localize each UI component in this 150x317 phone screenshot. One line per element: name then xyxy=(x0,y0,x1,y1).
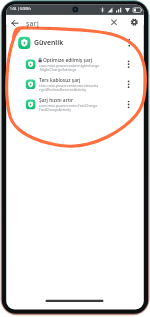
staticText: com.miui.powercenter.nightcharge xyxy=(39,63,100,68)
button[interactable]: Ters kablosuz şarj xyxy=(14,74,136,94)
staticText: com.miui.powercenter.fastCharge. xyxy=(39,103,99,108)
staticText: Şarj hızını artır xyxy=(39,97,73,104)
staticText: FastChargeActivity xyxy=(39,107,72,112)
staticText: Optimize edilmiş şarj xyxy=(43,57,93,64)
staticText: şarj xyxy=(26,19,40,28)
button[interactable]: şarj xyxy=(8,15,103,31)
staticText: Ters kablosuz şarj xyxy=(39,77,81,84)
staticText: 1:04 | 0.0KB/s xyxy=(10,7,31,11)
staticText: Güvenlik xyxy=(34,38,64,47)
staticText: rge.WirelessReverseActivity xyxy=(39,87,87,92)
button[interactable]: Optimize edilmiş şarj xyxy=(14,54,136,74)
button[interactable]: Şarj hızını artır xyxy=(14,94,136,114)
button[interactable] xyxy=(107,16,121,29)
button[interactable]: Güvenlik xyxy=(14,33,136,53)
staticText: .NightChargeSettings xyxy=(39,67,77,72)
staticText: com.miui.powercenter.wirelesscha xyxy=(39,83,99,88)
button[interactable] xyxy=(7,16,21,30)
button[interactable] xyxy=(127,15,142,29)
button[interactable] xyxy=(123,36,136,50)
